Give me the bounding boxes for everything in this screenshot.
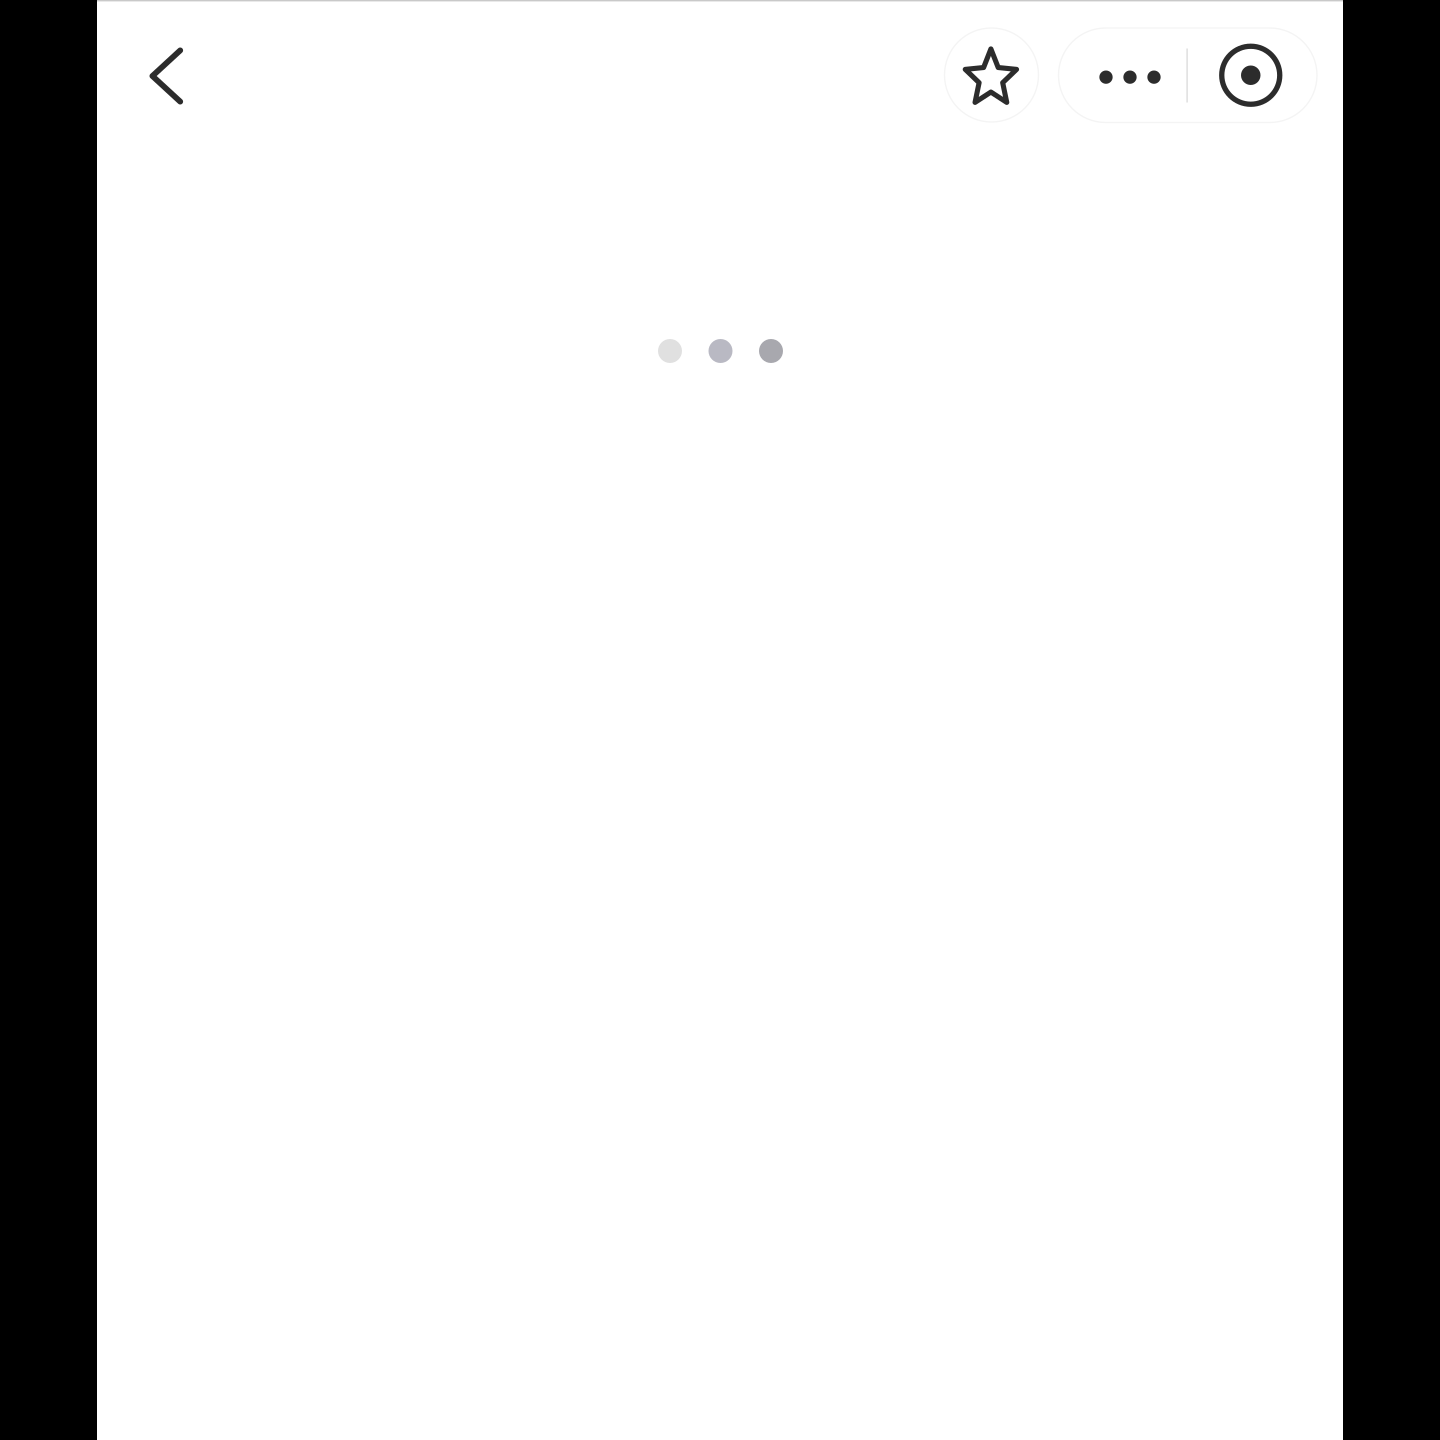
button[interactable]: Back: [118, 28, 214, 124]
button[interactable]: Favorite: [944, 28, 1038, 122]
button[interactable]: More: [1058, 28, 1185, 122]
button[interactable]: Close mini program: [1187, 28, 1317, 122]
